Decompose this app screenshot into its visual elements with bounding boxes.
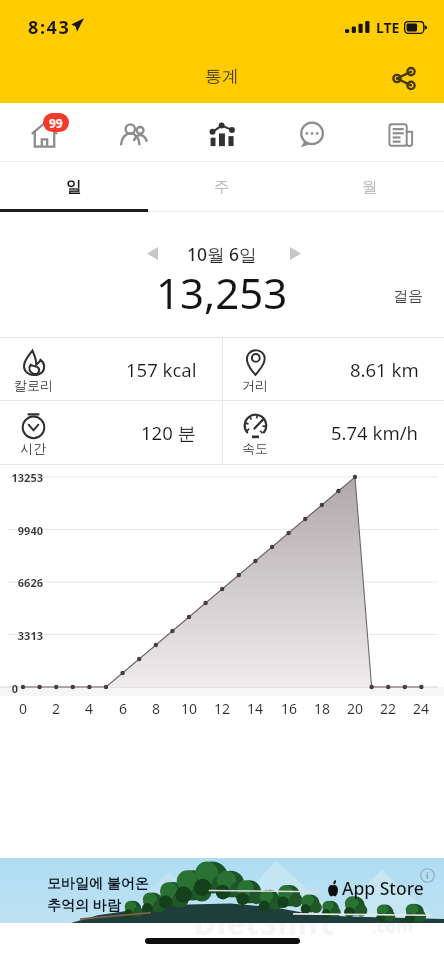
staticText: 월 [362, 177, 378, 197]
button[interactable]: Previous day [134, 235, 170, 271]
staticText: 통계 [205, 66, 239, 87]
staticText: 3313 [0, 628, 43, 643]
button[interactable]: Friends [88, 103, 177, 161]
staticText: 속도 [242, 440, 268, 456]
staticText: 시간 [20, 440, 46, 456]
staticText: 10 [175, 699, 203, 718]
button[interactable]: 시간 [0, 401, 222, 464]
staticText: 6626 [0, 575, 43, 590]
staticText: LTE [376, 18, 400, 37]
button[interactable]: 주 [148, 162, 296, 212]
staticText: 18 [308, 699, 336, 718]
staticText: 0 [9, 699, 37, 718]
staticText: 0 [0, 681, 18, 696]
button[interactable]: Chat [266, 103, 355, 161]
button[interactable]: Home [0, 103, 88, 161]
staticText: 걸음 [393, 287, 423, 306]
staticText: 거리 [242, 377, 268, 393]
staticText: 157 kcal [126, 357, 197, 382]
button[interactable]: Ad information [417, 865, 437, 885]
staticText: App Store [342, 876, 424, 900]
staticText: 주 [214, 177, 230, 197]
staticText: 13,253 [156, 264, 288, 321]
staticText: 99 [49, 115, 63, 131]
staticText: DietShift [194, 903, 335, 944]
staticText: 16 [275, 699, 303, 718]
button[interactable]: Share [382, 56, 426, 100]
staticText: 모바일에 불어온 [47, 873, 149, 892]
staticText: .com [372, 915, 413, 938]
staticText: 2 [42, 699, 70, 718]
staticText: 8.61 km [350, 357, 419, 382]
staticText: 12 [208, 699, 236, 718]
staticText: i [426, 869, 429, 881]
staticText: 14 [241, 699, 269, 718]
button[interactable]: 일 [0, 162, 148, 212]
button[interactable]: 거리 [222, 338, 444, 401]
staticText: 일 [66, 177, 82, 197]
staticText: 5.74 km/h [331, 420, 419, 445]
staticText: 4 [75, 699, 103, 718]
staticText: 6 [109, 699, 137, 718]
staticText: 8:43 [28, 15, 71, 40]
button[interactable]: 월 [296, 162, 444, 212]
button[interactable]: Next day [277, 235, 313, 271]
staticText: 24 [407, 699, 435, 718]
staticText: 8 [142, 699, 170, 718]
button[interactable]: 속도 [222, 401, 444, 464]
button[interactable]: 칼로리 [0, 338, 222, 401]
staticText: 칼로리 [14, 377, 53, 393]
staticText: 120 분 [141, 420, 197, 445]
staticText: 추억의 바람 [47, 895, 121, 914]
staticText: 10월 6일 [187, 242, 257, 266]
staticText: 22 [374, 699, 402, 718]
button[interactable]: News [355, 103, 444, 161]
button[interactable]: Statistics [177, 103, 266, 161]
staticText: 20 [341, 699, 369, 718]
staticText: 9940 [0, 523, 43, 538]
staticText: 13253 [0, 470, 43, 485]
